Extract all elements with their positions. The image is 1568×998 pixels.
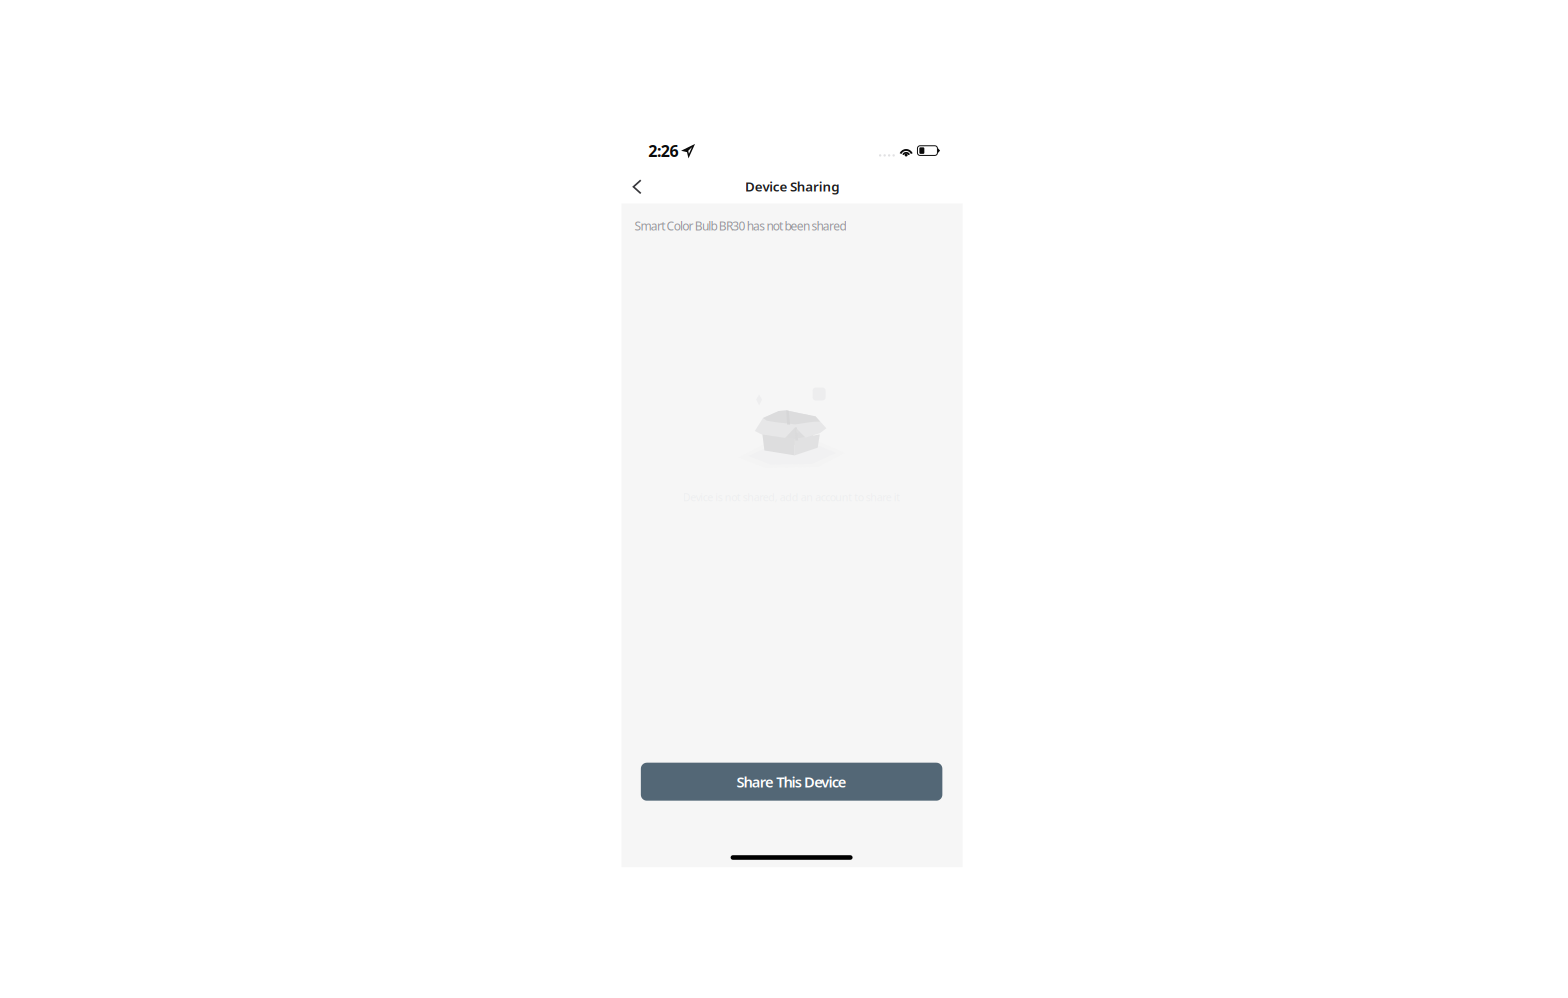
button[interactable]: Share This Device [641, 763, 942, 801]
button[interactable]: Back [619, 170, 655, 204]
staticText: Share This Device [736, 772, 847, 791]
staticText: 2:26 [648, 140, 679, 161]
staticText: Device Sharing [745, 177, 839, 195]
staticText: Smart Color Bulb BR30 has not been share… [634, 218, 846, 234]
